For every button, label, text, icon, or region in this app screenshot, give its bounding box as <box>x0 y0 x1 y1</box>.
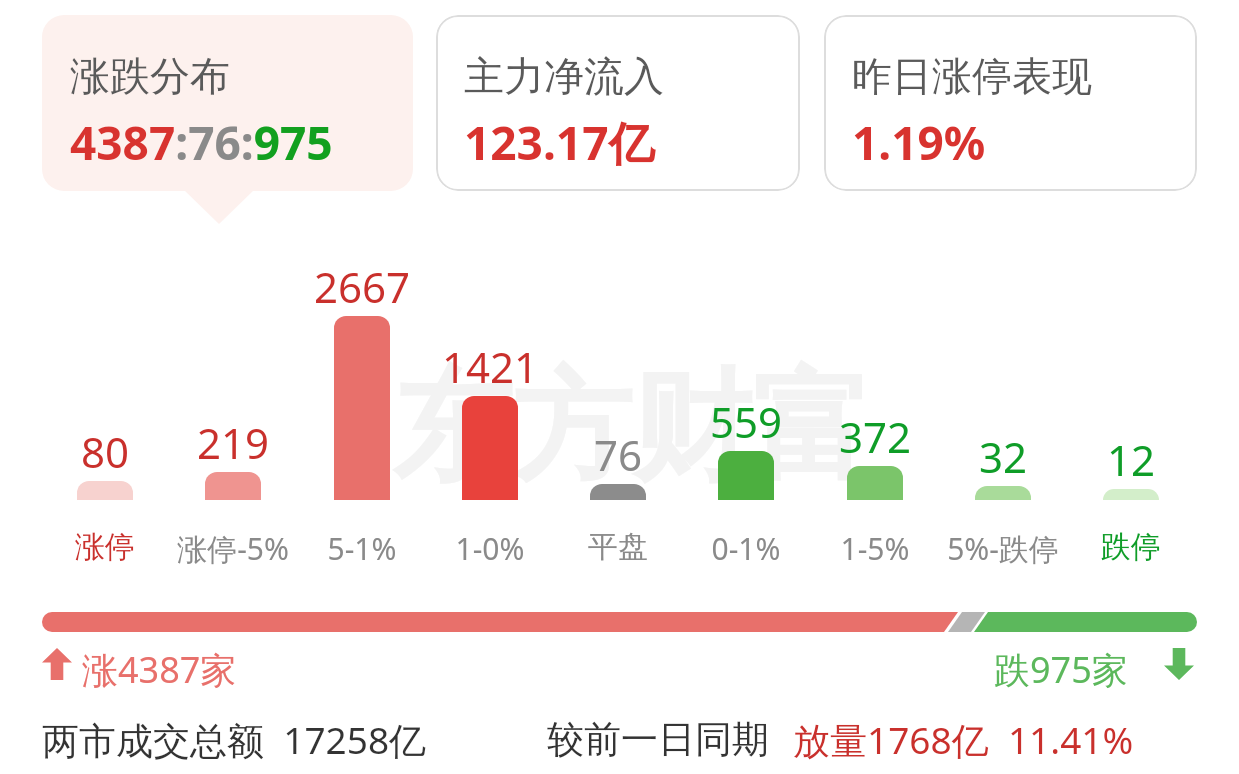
button[interactable] <box>1103 489 1159 500</box>
button[interactable] <box>77 481 133 500</box>
staticText: 5%-跌停 <box>903 528 1103 569</box>
staticText: 5-1% <box>262 528 462 569</box>
staticText: 1-5% <box>775 528 975 569</box>
staticText: 主力净流入 <box>464 51 664 101</box>
staticText: 涨跌分布 <box>70 51 230 101</box>
button[interactable]: 涨跌分布 <box>42 15 413 191</box>
button[interactable] <box>975 486 1031 500</box>
button[interactable] <box>334 316 390 500</box>
staticText: 1421 <box>400 338 580 395</box>
button[interactable] <box>847 466 903 500</box>
staticText: 较前一日同期 <box>547 716 769 763</box>
staticText: 123.17亿 <box>464 111 655 174</box>
staticText: 1.19% <box>852 111 986 174</box>
staticText: 2667 <box>272 258 452 315</box>
staticText: 昨日涨停表现 <box>852 51 1092 101</box>
button[interactable]: 昨日涨停表现 <box>824 15 1197 191</box>
button[interactable] <box>718 451 774 500</box>
staticText: 跌停 <box>1031 528 1231 566</box>
staticText: 两市成交总额 17258亿 <box>42 714 427 765</box>
staticText: 0-1% <box>646 528 846 569</box>
button[interactable]: 主力净流入 <box>436 15 800 191</box>
button[interactable] <box>42 612 1197 632</box>
staticText: 12 <box>1041 431 1221 488</box>
staticText: 372 <box>785 408 965 465</box>
staticText: 559 <box>656 393 836 450</box>
staticText: 放量1768亿 11.41% <box>793 714 1134 765</box>
staticText: 跌975家 <box>994 645 1128 694</box>
button[interactable] <box>590 484 646 500</box>
staticText: 东方财富 <box>392 352 872 503</box>
staticText: 4387:76:975 <box>70 111 333 174</box>
staticText: 80 <box>15 423 195 480</box>
button[interactable] <box>462 396 518 500</box>
staticText: 76 <box>528 426 708 483</box>
other: Declining <box>1164 648 1194 680</box>
staticText: 涨4387家 <box>82 645 237 694</box>
button[interactable]: 两市成交总额 17258亿 <box>42 714 1239 765</box>
staticText: 涨停-5% <box>133 528 333 569</box>
staticText: 1-0% <box>390 528 590 569</box>
staticText: 219 <box>143 414 323 471</box>
staticText: 32 <box>913 428 1093 485</box>
staticText: 平盘 <box>518 528 718 566</box>
staticText: 涨停 <box>5 528 205 566</box>
other: Advancing <box>42 648 72 680</box>
button[interactable] <box>205 472 261 500</box>
